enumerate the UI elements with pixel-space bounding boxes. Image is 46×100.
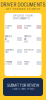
staticText: DRIVER DOCUMENTS <box>0 2 45 8</box>
staticText: Photo <box>24 60 29 63</box>
button[interactable]: Licence <box>4 24 22 30</box>
staticText: SUBMIT FOR REVIEW <box>7 84 39 88</box>
button[interactable]: Insurance <box>4 48 22 54</box>
staticText: Licence <box>4 24 11 27</box>
staticText: Aadhaar <box>4 60 12 63</box>
staticText: ID card <box>4 63 11 66</box>
staticText: Policy <box>4 51 8 54</box>
staticText: GET VERIFIED TO DRIVE <box>5 7 40 11</box>
button[interactable]: Vehicle RC <box>24 35 41 43</box>
staticText: Front <box>4 40 9 43</box>
staticText: Back <box>24 27 28 30</box>
staticText: Vehicle RC <box>4 35 11 40</box>
button[interactable]: Photo <box>24 60 41 66</box>
staticText: Front <box>4 27 9 30</box>
staticText: PUC <box>24 51 27 54</box>
button[interactable]: Licence <box>24 24 41 30</box>
staticText: Selfie <box>24 63 28 66</box>
button[interactable]: Aadhaar <box>4 60 22 66</box>
staticText: Usually takes 24 hours <box>11 88 34 90</box>
button[interactable]: SUBMIT FOR REVIEW <box>3 78 43 96</box>
staticText: Vehicle RC <box>24 35 31 40</box>
button[interactable]: Vehicle RC <box>4 35 22 43</box>
staticText: Back <box>24 40 28 43</box>
staticText: Pollution <box>24 48 33 51</box>
staticText: Insurance <box>4 48 13 51</box>
button[interactable]: Pollution <box>24 48 41 54</box>
staticText: UPLOAD YOUR DOCUMENTS <box>13 14 33 20</box>
staticText: Licence <box>24 24 31 27</box>
